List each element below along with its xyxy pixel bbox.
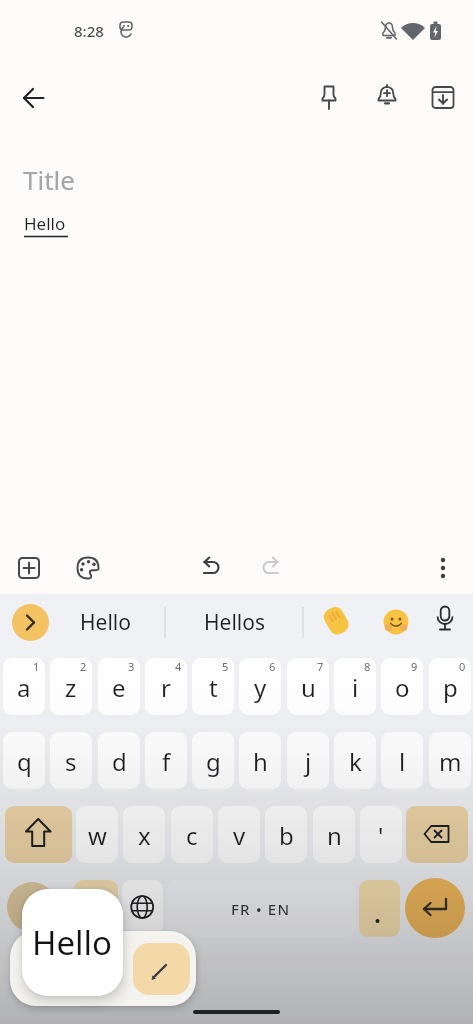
button[interactable] <box>367 78 407 118</box>
button[interactable]: k <box>334 732 376 789</box>
staticText: j <box>305 745 312 778</box>
button[interactable]: z <box>50 658 92 715</box>
staticText: o <box>395 671 410 704</box>
button[interactable]: g <box>192 732 234 789</box>
staticText: y <box>254 671 267 704</box>
staticText: Hellos <box>204 608 266 637</box>
staticText: x <box>138 819 151 852</box>
button[interactable]: Hello <box>22 889 123 996</box>
staticText: b <box>279 819 294 852</box>
button[interactable] <box>406 806 468 863</box>
staticText: i <box>352 671 359 704</box>
button[interactable]: b <box>265 806 307 863</box>
staticText: c <box>186 819 198 852</box>
button[interactable]: v <box>218 806 260 863</box>
button[interactable]: d <box>98 732 140 789</box>
staticText: ' <box>378 819 384 852</box>
staticText: 3 <box>128 659 135 674</box>
button[interactable] <box>359 880 400 937</box>
staticText: 9 <box>411 659 418 674</box>
button[interactable] <box>423 78 463 118</box>
staticText: 8:28 <box>74 21 104 41</box>
staticText: 7 <box>317 659 324 674</box>
staticText: z <box>65 671 77 704</box>
button[interactable]: FR • EN <box>167 880 355 937</box>
button[interactable] <box>309 78 349 118</box>
staticText: Hello <box>80 608 131 637</box>
button[interactable] <box>122 880 163 937</box>
staticText: 0 <box>459 659 466 674</box>
staticText: v <box>233 819 246 852</box>
button[interactable]: m <box>429 732 471 789</box>
button[interactable] <box>192 548 232 588</box>
button[interactable]: i <box>334 658 376 715</box>
button[interactable] <box>7 882 57 932</box>
button[interactable]: x <box>123 806 165 863</box>
staticText: 6 <box>269 659 276 674</box>
button[interactable] <box>133 943 190 995</box>
button[interactable]: w <box>76 806 118 863</box>
staticText: s <box>65 745 77 778</box>
button[interactable]: t <box>192 658 234 715</box>
staticText: 5 <box>222 659 229 674</box>
button[interactable]: q <box>3 732 45 789</box>
button[interactable] <box>5 806 72 863</box>
staticText: m <box>439 745 462 778</box>
button[interactable] <box>423 548 463 588</box>
staticText: p <box>443 671 458 704</box>
staticText: Hello <box>32 920 113 965</box>
staticText: f <box>162 745 171 778</box>
staticText: w <box>88 819 107 852</box>
button[interactable] <box>405 878 465 938</box>
button[interactable]: ' <box>360 806 402 863</box>
staticText: h <box>253 745 268 778</box>
button[interactable]: r <box>145 658 187 715</box>
button[interactable]: e <box>98 658 140 715</box>
button[interactable]: s <box>50 732 92 789</box>
staticText: q <box>17 745 32 778</box>
button[interactable] <box>9 548 49 588</box>
button[interactable] <box>68 548 108 588</box>
staticText: e <box>112 671 126 704</box>
button[interactable] <box>12 604 49 641</box>
staticText: r <box>161 671 171 704</box>
staticText: 1 <box>33 659 40 674</box>
staticText: u <box>301 671 316 704</box>
button[interactable]: o <box>381 658 423 715</box>
button[interactable]: c <box>171 806 213 863</box>
staticText: t <box>209 671 218 704</box>
button[interactable]: u <box>287 658 329 715</box>
button[interactable]: n <box>313 806 355 863</box>
button[interactable]: f <box>145 732 187 789</box>
staticText: Hello <box>24 212 66 235</box>
staticText: 2 <box>80 659 87 674</box>
staticText: a <box>17 671 31 704</box>
button[interactable]: Hello <box>60 598 150 646</box>
staticText: d <box>112 745 127 778</box>
button[interactable] <box>74 880 118 937</box>
button[interactable] <box>14 78 54 118</box>
button[interactable]: h <box>239 732 281 789</box>
staticText: Title <box>23 162 75 197</box>
staticText: n <box>327 819 342 852</box>
staticText: FR • EN <box>231 899 291 919</box>
staticText: 4 <box>175 659 182 674</box>
button[interactable]: p <box>429 658 471 715</box>
button[interactable]: j <box>287 732 329 789</box>
staticText: k <box>349 745 362 778</box>
button[interactable] <box>250 548 290 588</box>
staticText: l <box>399 745 406 778</box>
staticText: 8 <box>364 659 371 674</box>
button[interactable]: a <box>3 658 45 715</box>
button[interactable]: Hellos <box>190 598 280 646</box>
button[interactable]: l <box>381 732 423 789</box>
staticText: g <box>206 745 221 778</box>
button[interactable]: y <box>239 658 281 715</box>
